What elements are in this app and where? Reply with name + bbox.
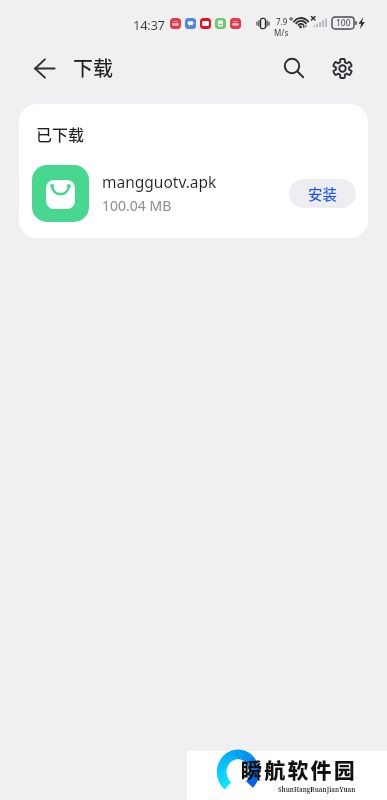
button[interactable]: Settings (320, 46, 364, 90)
button[interactable]: Search (272, 46, 316, 90)
staticText: 100.04 MB (102, 196, 172, 215)
staticText: mangguotv.apk (102, 171, 217, 192)
staticText: 安装 (308, 183, 337, 204)
button[interactable]: mangguotv.apk (19, 162, 368, 224)
button[interactable]: Back (22, 56, 66, 80)
staticText: M/s (274, 27, 289, 38)
staticText: 100 (336, 17, 351, 29)
button[interactable]: 安装 (289, 179, 356, 208)
staticText: ShunHangRuanJianYuan (278, 785, 356, 793)
staticText: 7.9 (276, 16, 288, 27)
staticText: 瞬航软件园 (241, 754, 357, 784)
staticText: 已下载 (36, 122, 85, 145)
staticText: 14:37 (133, 16, 165, 34)
staticText: 下载 (73, 53, 113, 82)
